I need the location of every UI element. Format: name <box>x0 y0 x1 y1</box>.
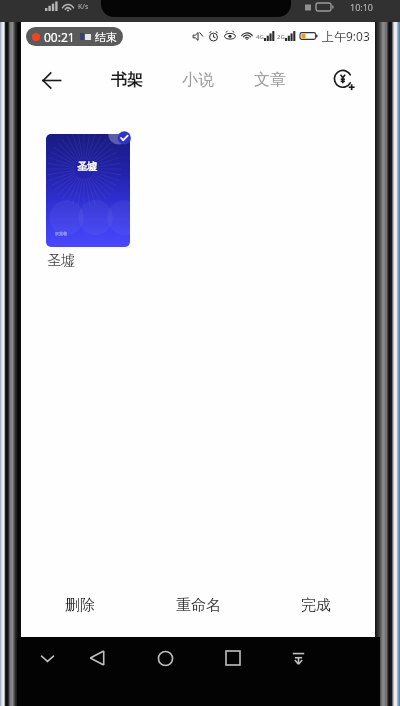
staticText: 2G <box>277 33 285 41</box>
staticText: 重命名 <box>176 596 221 615</box>
staticText: 辰东著 <box>55 231 67 236</box>
button[interactable]: 书架 <box>105 63 149 97</box>
button[interactable]: Hide keyboard <box>34 645 60 671</box>
staticText: 删除 <box>65 596 95 615</box>
button[interactable]: Selected <box>104 120 144 160</box>
staticText: 10:10 <box>350 1 374 13</box>
button[interactable]: 删除 <box>21 585 139 625</box>
button[interactable]: 文章 <box>248 63 292 97</box>
staticText: 完成 <box>301 596 331 615</box>
staticText: 上午9:03 <box>322 28 370 44</box>
staticText: 小说 <box>182 70 214 90</box>
button[interactable]: Back <box>34 63 68 97</box>
button[interactable]: Recents <box>220 645 246 671</box>
staticText: 00:21 <box>44 29 75 45</box>
button[interactable]: Back <box>84 645 110 671</box>
staticText: 圣墟 <box>47 252 75 270</box>
button[interactable]: 圣墟 <box>46 134 130 247</box>
button[interactable]: 小说 <box>176 63 220 97</box>
button[interactable]: 重命名 <box>139 585 257 625</box>
staticText: 书架 <box>111 70 143 90</box>
staticText: 结束 <box>95 30 117 44</box>
button[interactable]: 00:21 <box>26 27 123 46</box>
staticText: 4G <box>256 33 264 41</box>
staticText: 文章 <box>254 70 286 90</box>
button[interactable]: Add paid chapter <box>327 63 361 97</box>
button[interactable]: 完成 <box>257 585 375 625</box>
staticText: 圣墟 <box>77 160 97 173</box>
button[interactable]: Download <box>285 645 311 671</box>
staticText: K/s <box>78 2 89 12</box>
button[interactable]: Home <box>152 645 178 671</box>
